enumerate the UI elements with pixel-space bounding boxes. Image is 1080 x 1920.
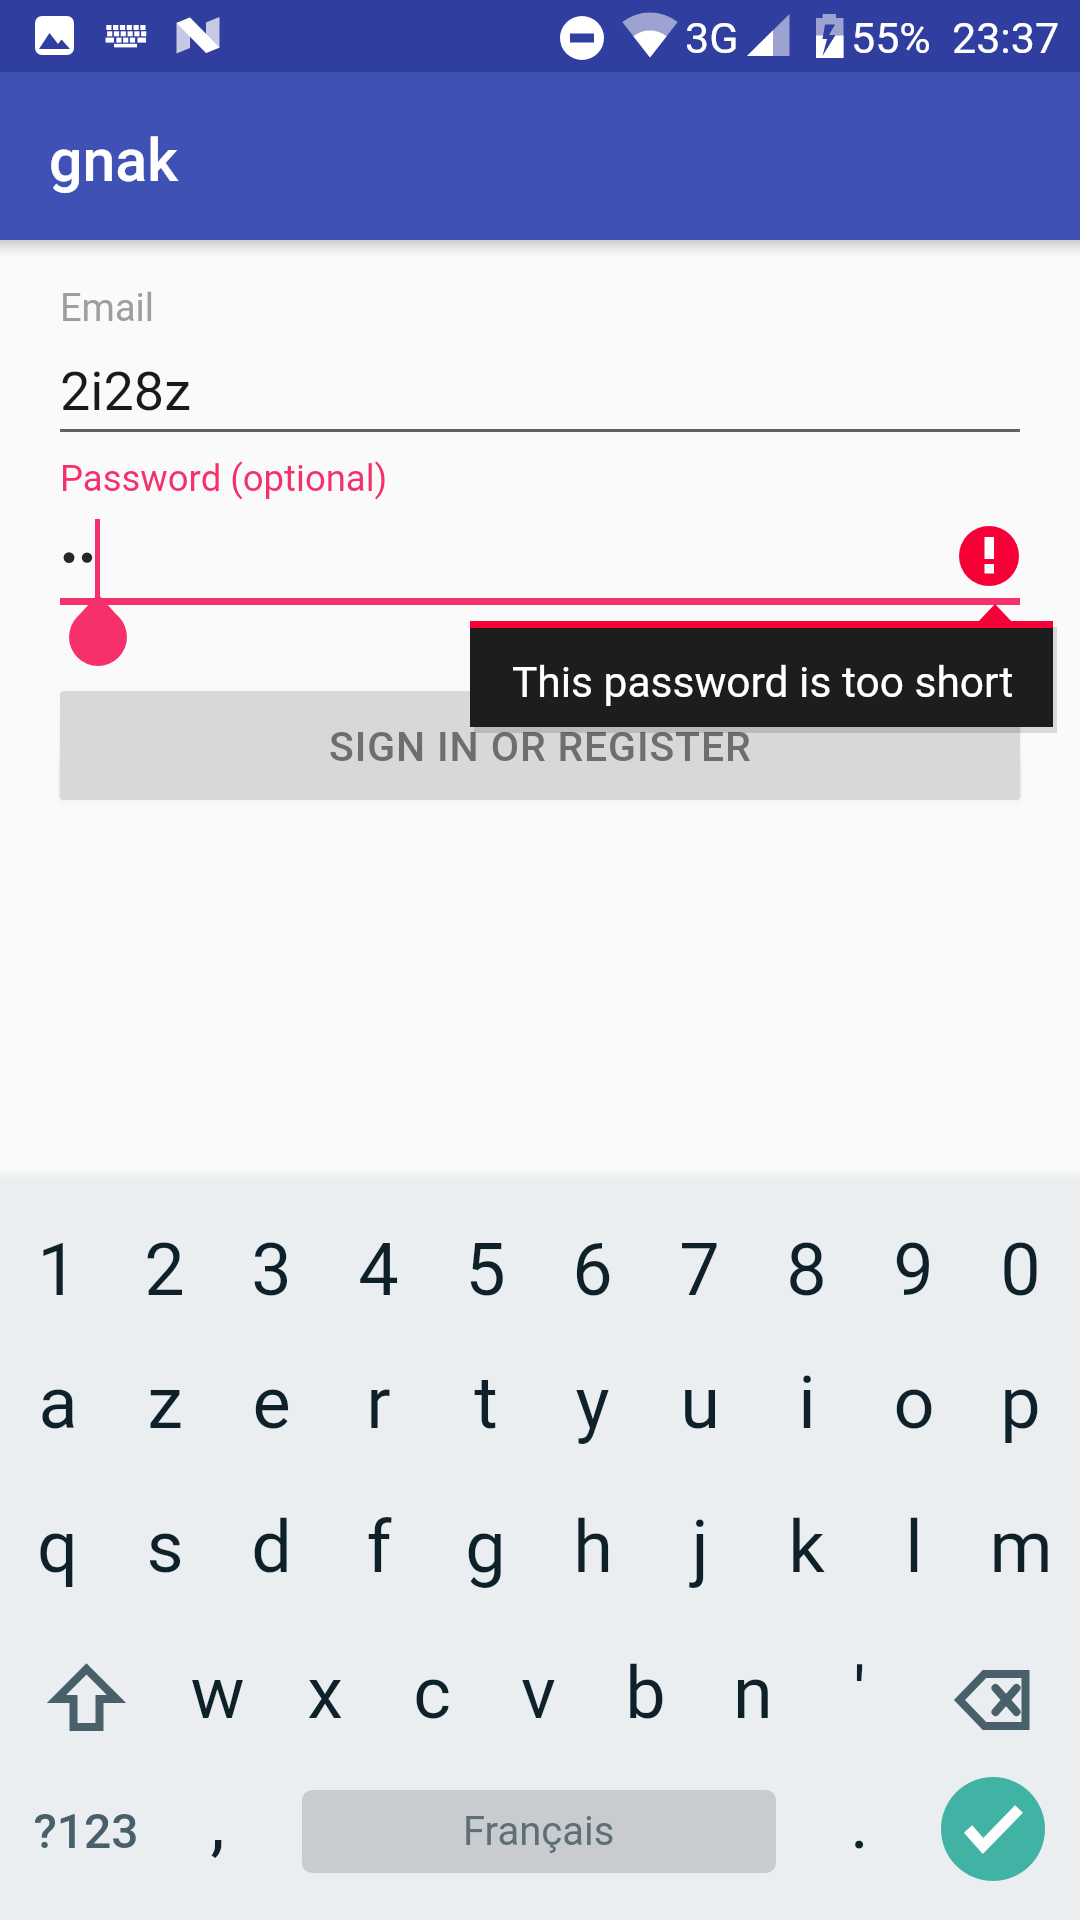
- button[interactable]: e: [218, 1343, 325, 1463]
- staticText: Password (optional): [60, 457, 388, 500]
- staticText: ?123: [33, 1803, 139, 1859]
- button[interactable]: t: [432, 1343, 539, 1463]
- staticText: SIGN IN OR REGISTER: [329, 723, 752, 771]
- staticText: w: [190, 1651, 245, 1735]
- button[interactable]: j: [646, 1487, 753, 1607]
- button[interactable]: 5: [432, 1210, 539, 1330]
- button[interactable]: i: [753, 1343, 860, 1463]
- button[interactable]: y: [539, 1343, 646, 1463]
- button[interactable]: a: [4, 1343, 111, 1463]
- button[interactable]: w: [164, 1633, 271, 1753]
- button[interactable]: 3: [218, 1210, 325, 1330]
- staticText: s: [146, 1505, 184, 1589]
- button[interactable]: 8: [753, 1210, 860, 1330]
- staticText: l: [905, 1505, 923, 1589]
- button[interactable]: h: [539, 1487, 646, 1607]
- staticText: 3G: [685, 13, 739, 63]
- button[interactable]: r: [325, 1343, 432, 1463]
- button[interactable]: b: [592, 1633, 699, 1753]
- staticText: m: [989, 1505, 1053, 1589]
- staticText: c: [413, 1651, 451, 1735]
- staticText: b: [625, 1651, 666, 1735]
- button[interactable]: x: [271, 1633, 378, 1753]
- button[interactable]: Français: [302, 1790, 776, 1873]
- staticText: p: [1000, 1361, 1041, 1445]
- button[interactable]: Password (optional): [60, 445, 1020, 605]
- staticText: 2: [144, 1228, 185, 1312]
- staticText: 4: [358, 1228, 399, 1312]
- staticText: 3: [251, 1228, 292, 1312]
- button[interactable]: 9: [860, 1210, 967, 1330]
- staticText: y: [575, 1361, 610, 1445]
- button[interactable]: o: [860, 1343, 967, 1463]
- staticText: x: [307, 1651, 343, 1735]
- button[interactable]: v: [485, 1633, 592, 1753]
- button[interactable]: m: [967, 1487, 1074, 1607]
- staticText: 0: [1000, 1228, 1041, 1312]
- button[interactable]: z: [111, 1343, 218, 1463]
- staticText: 6: [572, 1228, 613, 1312]
- staticText: r: [366, 1361, 391, 1445]
- staticText: Français: [463, 1808, 615, 1855]
- button[interactable]: c: [378, 1633, 485, 1753]
- staticText: t: [474, 1361, 498, 1445]
- staticText: g: [465, 1505, 506, 1589]
- staticText: n: [733, 1651, 773, 1735]
- button[interactable]: ?123: [5, 1771, 166, 1891]
- button[interactable]: 4: [325, 1210, 432, 1330]
- staticText: o: [893, 1361, 935, 1445]
- button[interactable]: Enter: [941, 1777, 1045, 1881]
- button[interactable]: s: [111, 1487, 218, 1607]
- staticText: 2i28z: [60, 360, 191, 423]
- button[interactable]: Email: [60, 275, 1020, 432]
- staticText: q: [37, 1505, 78, 1589]
- button[interactable]: q: [4, 1487, 111, 1607]
- staticText: This password is too short: [512, 658, 1014, 708]
- staticText: 1: [37, 1228, 78, 1312]
- button[interactable]: f: [325, 1487, 432, 1607]
- staticText: v: [521, 1651, 556, 1735]
- button[interactable]: Backspace: [913, 1640, 1074, 1760]
- staticText: gnak: [49, 126, 179, 195]
- staticText: 23:37: [952, 13, 1060, 63]
- staticText: 7: [679, 1228, 720, 1312]
- button[interactable]: 6: [539, 1210, 646, 1330]
- staticText: z: [147, 1361, 183, 1445]
- staticText: e: [252, 1361, 291, 1445]
- staticText: 9: [893, 1228, 934, 1312]
- staticText: ': [853, 1651, 866, 1735]
- button[interactable]: p: [967, 1343, 1074, 1463]
- button[interactable]: g: [432, 1487, 539, 1607]
- button[interactable]: .: [806, 1763, 913, 1883]
- button[interactable]: ': [806, 1633, 913, 1753]
- button[interactable]: 0: [967, 1210, 1074, 1330]
- button[interactable]: k: [753, 1487, 860, 1607]
- staticText: 55%: [851, 13, 931, 63]
- button[interactable]: l: [860, 1487, 967, 1607]
- button[interactable]: 7: [646, 1210, 753, 1330]
- staticText: Email: [60, 286, 155, 331]
- button[interactable]: d: [218, 1487, 325, 1607]
- staticText: f: [366, 1505, 392, 1589]
- button[interactable]: ,: [164, 1763, 271, 1883]
- button[interactable]: 2: [111, 1210, 218, 1330]
- staticText: k: [788, 1505, 825, 1589]
- staticText: i: [798, 1361, 816, 1445]
- button[interactable]: u: [646, 1343, 753, 1463]
- button[interactable]: 1: [4, 1210, 111, 1330]
- staticText: a: [38, 1361, 78, 1445]
- button[interactable]: SIGN IN OR REGISTER: [60, 691, 1020, 800]
- staticText: j: [691, 1505, 709, 1589]
- staticText: u: [680, 1361, 720, 1445]
- staticText: 8: [786, 1228, 827, 1312]
- staticText: .: [850, 1781, 869, 1865]
- button[interactable]: n: [699, 1633, 806, 1753]
- staticText: 5: [465, 1228, 506, 1312]
- staticText: ,: [210, 1781, 225, 1865]
- staticText: d: [251, 1505, 292, 1589]
- button[interactable]: Shift: [6, 1638, 167, 1758]
- staticText: h: [573, 1505, 613, 1589]
